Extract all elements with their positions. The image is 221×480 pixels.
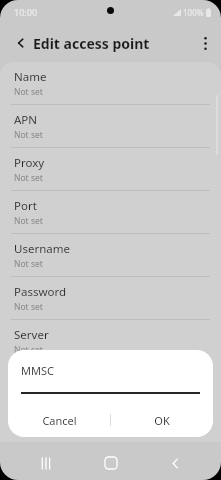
button[interactable]: OK bbox=[111, 407, 213, 433]
button[interactable]: Port bbox=[0, 191, 221, 233]
staticText: Cancel bbox=[42, 413, 77, 428]
staticText: Not set bbox=[14, 301, 43, 313]
staticText: Proxy bbox=[14, 155, 45, 171]
button[interactable]: Home bbox=[93, 446, 129, 480]
staticText: OK bbox=[154, 413, 170, 428]
button[interactable]: Username bbox=[0, 234, 221, 276]
staticText: Edit access point bbox=[33, 34, 150, 53]
staticText: Not set bbox=[14, 129, 43, 141]
staticText: Not set bbox=[14, 258, 43, 270]
staticText: Not set bbox=[14, 172, 43, 184]
staticText: Not set bbox=[14, 344, 43, 356]
button[interactable]: Recents bbox=[28, 446, 64, 480]
button[interactable]: Proxy bbox=[0, 148, 221, 190]
staticText: Not set bbox=[14, 215, 43, 227]
staticText: Server bbox=[14, 327, 49, 343]
button[interactable]: Server bbox=[0, 320, 221, 362]
staticText: Password bbox=[14, 284, 67, 300]
staticText: Not set bbox=[14, 86, 43, 98]
staticText: Username bbox=[14, 241, 70, 257]
button[interactable]: Name bbox=[0, 62, 221, 104]
staticText: 100% bbox=[183, 7, 204, 18]
staticText: APN bbox=[14, 112, 38, 128]
button[interactable]: Back bbox=[157, 446, 193, 480]
button[interactable]: More options bbox=[193, 31, 217, 55]
staticText: Name bbox=[14, 69, 47, 85]
button[interactable]: Password bbox=[0, 277, 221, 319]
staticText: MMSC bbox=[21, 363, 54, 378]
button[interactable]: APN bbox=[0, 105, 221, 147]
button[interactable]: Back bbox=[10, 32, 32, 54]
button[interactable]: Cancel bbox=[8, 407, 110, 433]
staticText: 10:00 bbox=[14, 6, 38, 18]
staticText: Port bbox=[14, 198, 37, 214]
